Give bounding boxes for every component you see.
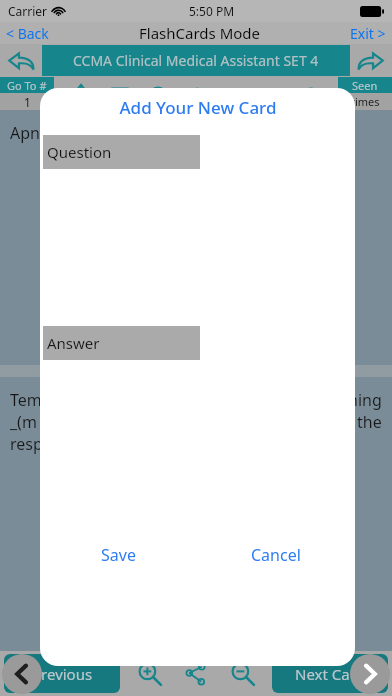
staticText: Next Card [295, 664, 365, 684]
staticText: Apn [10, 122, 40, 144]
staticText: resp [10, 433, 43, 455]
staticText: Tem [10, 389, 42, 411]
button[interactable]: Previous card [2, 654, 42, 694]
button[interactable]: Share [179, 657, 213, 691]
staticText: _(m [10, 411, 37, 433]
button[interactable]: Tool 4 [219, 80, 249, 108]
button[interactable]: Answer [43, 326, 200, 360]
button[interactable]: Tool 0 [66, 80, 96, 108]
button[interactable]: Next Card [272, 654, 388, 693]
staticText: Save [101, 544, 136, 566]
staticText: hing [348, 389, 382, 411]
button[interactable]: Tool 2 [143, 80, 173, 108]
staticText: Carrier [8, 3, 48, 19]
button[interactable]: Tool 6 [296, 80, 326, 108]
staticText: Answer [47, 333, 100, 353]
button[interactable]: < Back [0, 24, 55, 43]
staticText: < Back [6, 24, 49, 43]
button[interactable]: Next set [350, 44, 392, 77]
staticText: Add Your New Card [119, 96, 277, 119]
staticText: Go To # [7, 78, 47, 93]
staticText: Exit > [350, 24, 386, 43]
button[interactable]: CCMA Clinical Medical Assistant SET 4 [42, 45, 350, 76]
staticText: the [357, 411, 382, 433]
button[interactable]: Exit > [344, 24, 392, 43]
button[interactable]: Tool 3 [181, 80, 211, 108]
button[interactable]: Tool 1 [105, 80, 135, 108]
button[interactable]: Cancel [197, 538, 355, 572]
staticText: FlashCards Mode [139, 23, 260, 43]
staticText: 1 [24, 94, 31, 110]
button[interactable]: Previous set [0, 44, 42, 77]
button[interactable]: Previous [4, 654, 120, 693]
button[interactable]: Zoom out [226, 657, 260, 691]
staticText: CCMA Clinical Medical Assistant SET 4 [73, 51, 319, 70]
button[interactable]: Question [43, 135, 200, 169]
staticText: Question [47, 142, 112, 162]
button[interactable]: Go To # [0, 77, 54, 93]
staticText: times [351, 94, 380, 109]
staticText: Cancel [251, 544, 301, 566]
button[interactable]: Zoom in [133, 657, 167, 691]
button[interactable]: Tool 5 [258, 80, 288, 108]
staticText: 5:50 PM [189, 3, 235, 19]
staticText: Previous [32, 664, 93, 684]
staticText: Seen [352, 78, 378, 93]
button[interactable]: Save [40, 538, 197, 572]
button[interactable]: Seen [338, 77, 392, 93]
button[interactable]: Next card [350, 654, 390, 694]
